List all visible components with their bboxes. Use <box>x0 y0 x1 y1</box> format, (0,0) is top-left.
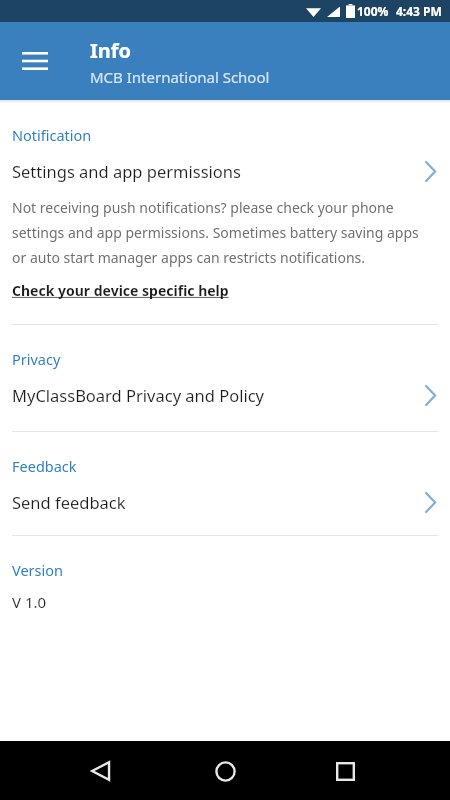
staticText: 100% <box>357 3 389 19</box>
staticText: MyClassBoard Privacy and Policy <box>12 384 265 406</box>
staticText: 4:43 PM <box>396 3 442 19</box>
staticText: Settings and app permissions <box>12 160 241 182</box>
staticText: Version <box>12 560 63 580</box>
button[interactable]: Open navigation drawer <box>10 36 60 86</box>
staticText: Info <box>90 37 132 64</box>
button[interactable]: Check your device specific help <box>0 279 241 302</box>
button[interactable]: Settings and app permissions <box>0 156 450 186</box>
button[interactable]: Home <box>199 745 251 797</box>
button[interactable]: Back <box>74 745 126 797</box>
button[interactable]: Send feedback <box>0 487 450 517</box>
staticText: Not receiving push notifications? please… <box>12 198 434 267</box>
staticText: Privacy <box>12 349 61 369</box>
button[interactable]: MyClassBoard Privacy and Policy <box>0 380 450 410</box>
staticText: V 1.0 <box>12 592 47 612</box>
staticText: Feedback <box>12 456 77 476</box>
staticText: Check your device specific help <box>12 281 229 300</box>
staticText: MCB International School <box>90 67 270 87</box>
button[interactable]: Recent apps <box>319 745 371 797</box>
staticText: Notification <box>12 125 92 145</box>
staticText: Send feedback <box>12 491 126 513</box>
